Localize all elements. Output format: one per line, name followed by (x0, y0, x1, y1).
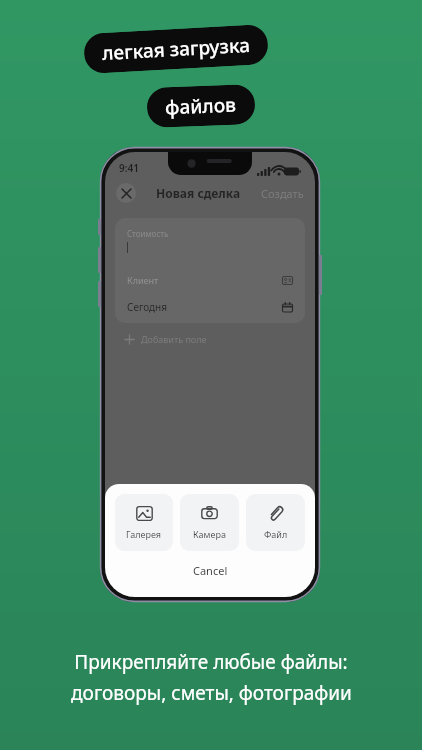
staticText: Сегодня (127, 300, 168, 314)
button[interactable]: Камера (180, 494, 239, 551)
button[interactable]: Галерея (115, 494, 173, 551)
staticText: Стоимость (127, 228, 169, 239)
staticText: Файл (264, 528, 288, 540)
staticText: договоры, сметы, фотографии (71, 680, 352, 706)
button[interactable]: файлов (146, 84, 256, 128)
staticText: легкая загрузка (101, 32, 251, 66)
button[interactable]: легкая загрузка (83, 24, 269, 74)
button[interactable]: Close (116, 183, 136, 203)
staticText: Cancel (193, 563, 228, 578)
staticText: Прикрепляйте любые файлы: (74, 649, 348, 675)
button[interactable]: Стоимость (115, 218, 305, 261)
button[interactable]: Клиент (115, 267, 305, 293)
staticText: Новая сделка (156, 185, 241, 201)
staticText: Камера (193, 528, 226, 540)
staticText: Создать (261, 186, 304, 201)
button[interactable]: Создать (261, 186, 304, 201)
staticText: Галерея (126, 528, 162, 540)
other: Contacts (282, 275, 293, 286)
staticText: Клиент (127, 274, 159, 286)
button[interactable]: Cancel (115, 551, 305, 589)
button[interactable]: Добавить поле (125, 333, 207, 345)
button[interactable]: Файл (246, 494, 305, 551)
button[interactable]: Сегодня (115, 293, 305, 321)
staticText: файлов (164, 92, 237, 120)
other: Calendar (282, 302, 293, 313)
staticText: 9:41 (119, 161, 139, 175)
staticText: Добавить поле (141, 333, 207, 345)
